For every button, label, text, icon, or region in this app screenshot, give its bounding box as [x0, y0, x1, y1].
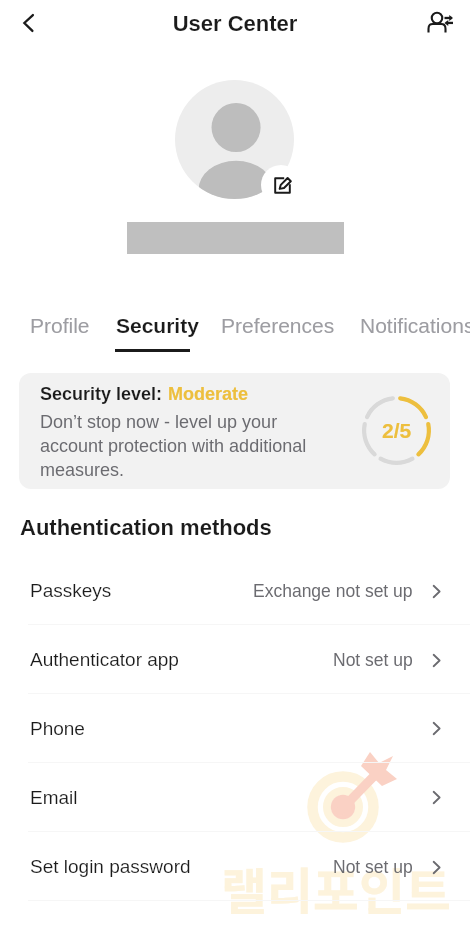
button[interactable]: Profile photo [175, 80, 294, 199]
button[interactable]: Preferences [207, 307, 349, 343]
staticText: Authenticator app [30, 649, 179, 670]
button[interactable]: Passkeys [0, 556, 470, 625]
button[interactable]: Email [0, 763, 470, 832]
staticText: 랠리포인트 [221, 852, 451, 924]
button[interactable]: Notifications [346, 307, 470, 343]
staticText: Security level: [40, 384, 168, 404]
staticText: Set login password [30, 856, 191, 877]
staticText: Phone [30, 718, 85, 739]
staticText: 2/5 [382, 419, 412, 442]
button[interactable]: Back [10, 3, 50, 43]
staticText: Not set up [333, 857, 413, 877]
staticText: Moderate [168, 384, 249, 404]
staticText: User Center [0, 11, 470, 36]
button[interactable]: Security level: [19, 373, 450, 489]
staticText: Passkeys [30, 580, 112, 601]
staticText: Exchange not set up [253, 581, 413, 601]
button[interactable]: Switch account [417, 0, 463, 46]
button[interactable]: Edit profile [261, 165, 301, 205]
button[interactable]: Profile [16, 307, 104, 343]
button[interactable]: Set login password [0, 832, 470, 901]
staticText: Security [116, 314, 199, 337]
staticText: Preferences [221, 314, 335, 337]
staticText: Notifications [360, 314, 470, 337]
staticText: Authentication methods [20, 515, 272, 540]
button[interactable]: Authenticator app [0, 625, 470, 694]
staticText: Email [30, 787, 78, 808]
staticText: Don’t stop now - level up your account p… [40, 412, 316, 480]
staticText: Profile [30, 314, 90, 337]
staticText: Not set up [333, 650, 413, 670]
button[interactable]: Security [102, 307, 213, 343]
button[interactable]: Phone [0, 694, 470, 763]
